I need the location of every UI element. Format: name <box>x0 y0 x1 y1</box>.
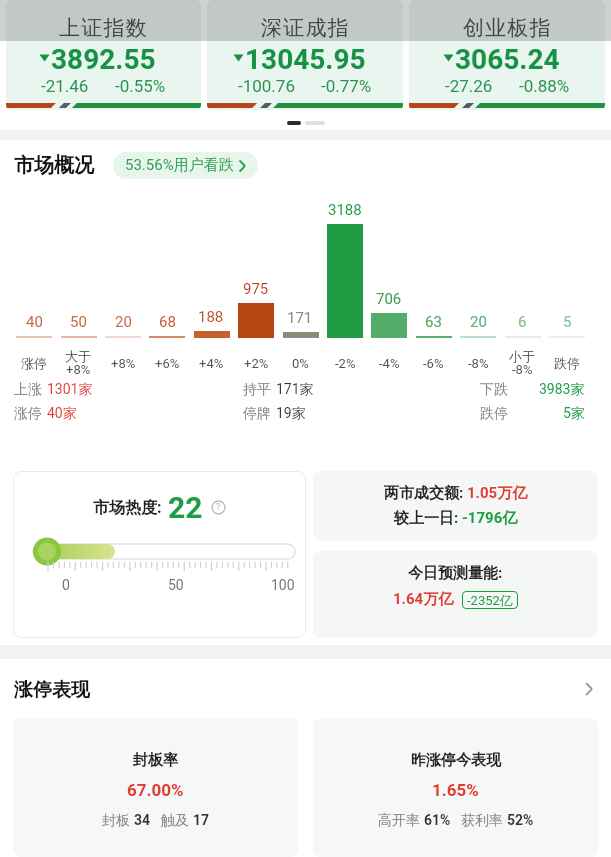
staticText: -27.26 <box>445 76 493 94</box>
staticText: 跌停 <box>554 355 580 371</box>
staticText: -0.77% <box>321 76 372 94</box>
staticText: -100.76 <box>238 76 295 94</box>
staticText: 1.65% <box>432 780 479 800</box>
staticText: 6 <box>518 313 527 331</box>
staticText: 3065.24 <box>455 43 560 71</box>
staticText: -8% <box>512 362 533 377</box>
staticText: 975 <box>243 280 269 298</box>
staticText: 100 <box>271 577 295 593</box>
staticText: +2% <box>244 356 269 371</box>
staticText: 34 <box>134 812 151 828</box>
staticText: 19家 <box>276 405 306 423</box>
staticText: 上证指数 <box>59 15 148 41</box>
staticText: -21.46 <box>41 76 89 94</box>
staticText: 50 <box>168 577 184 593</box>
staticText: 深证成指 <box>261 15 350 41</box>
staticText: +4% <box>199 356 224 371</box>
staticText: 3892.55 <box>51 43 156 71</box>
staticText: 706 <box>376 290 402 308</box>
staticText: 20 <box>115 313 132 331</box>
staticText: 40 <box>26 313 43 331</box>
staticText: 大于 <box>65 348 91 364</box>
staticText: 50 <box>70 313 87 331</box>
staticText: 封板 <box>102 812 134 830</box>
staticText: 22 <box>168 490 203 525</box>
staticText: 40家 <box>47 405 77 423</box>
staticText: 下跌 <box>480 381 508 399</box>
staticText: +8% <box>66 362 91 377</box>
staticText: 0% <box>292 356 309 371</box>
staticText: 停牌 <box>243 405 271 423</box>
staticText: -0.55% <box>115 76 166 94</box>
staticText: 涨停 <box>21 355 47 371</box>
staticText: 今日预测量能: <box>408 564 503 583</box>
staticText: 53.56%用户看跌 <box>125 156 234 175</box>
staticText: -8% <box>468 356 489 371</box>
staticText: -2352亿 <box>467 592 513 608</box>
staticText: +8% <box>111 356 136 371</box>
staticText: -2% <box>335 356 356 371</box>
staticText: 小于 <box>509 348 535 364</box>
staticText: 市场概况 <box>14 153 94 178</box>
staticText: 0 <box>62 577 70 593</box>
staticText: 171家 <box>276 381 314 399</box>
staticText: 1.64万亿 <box>393 590 454 609</box>
staticText: 1301家 <box>47 381 93 399</box>
staticText: 涨停 <box>14 405 42 423</box>
staticText: 188 <box>198 308 224 326</box>
staticText: -1796亿 <box>462 509 518 528</box>
staticText: 63 <box>425 313 442 331</box>
staticText: 67.00% <box>127 780 184 800</box>
staticText: 52% <box>507 812 534 828</box>
staticText: 创业板指 <box>463 15 552 41</box>
staticText: 20 <box>470 313 487 331</box>
staticText: 涨停表现 <box>14 678 90 702</box>
staticText: 3188 <box>328 201 362 219</box>
staticText: 触及 <box>161 812 193 830</box>
staticText: -4% <box>379 356 400 371</box>
staticText: 5 <box>563 313 572 331</box>
staticText: 13045.95 <box>245 43 366 71</box>
staticText: 跌停 <box>480 405 508 423</box>
staticText: 68 <box>159 313 176 331</box>
staticText: 获利率 <box>461 812 507 830</box>
staticText: 5家 <box>563 405 585 423</box>
staticText: 171 <box>287 309 313 327</box>
staticText: 昨涨停今表现 <box>411 751 501 770</box>
staticText: 持平 <box>243 381 271 399</box>
staticText: -0.88% <box>519 76 570 94</box>
staticText: 较上一日: <box>394 509 462 528</box>
staticText: 上涨 <box>14 381 42 399</box>
staticText: +6% <box>155 356 180 371</box>
staticText: 3983家 <box>539 381 585 399</box>
staticText: 17 <box>193 812 210 828</box>
staticText: 1.05万亿 <box>467 484 528 503</box>
staticText: 61% <box>424 812 451 828</box>
staticText: 高开率 <box>378 812 424 830</box>
staticText: ? <box>216 502 221 513</box>
staticText: 封板率 <box>133 751 178 770</box>
staticText: -6% <box>423 356 444 371</box>
staticText: 市场热度: <box>93 498 162 518</box>
staticText: 两市成交额: <box>384 484 467 503</box>
